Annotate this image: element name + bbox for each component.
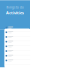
button[interactable] (5, 30, 30, 35)
staticText: Things to do (6, 6, 24, 9)
button[interactable] (5, 49, 30, 53)
staticText: Activities (6, 10, 24, 15)
button[interactable] (5, 39, 30, 44)
button[interactable] (5, 25, 30, 30)
button[interactable] (5, 53, 30, 58)
button[interactable] (5, 35, 30, 39)
button[interactable] (5, 58, 30, 63)
button[interactable] (5, 44, 30, 49)
